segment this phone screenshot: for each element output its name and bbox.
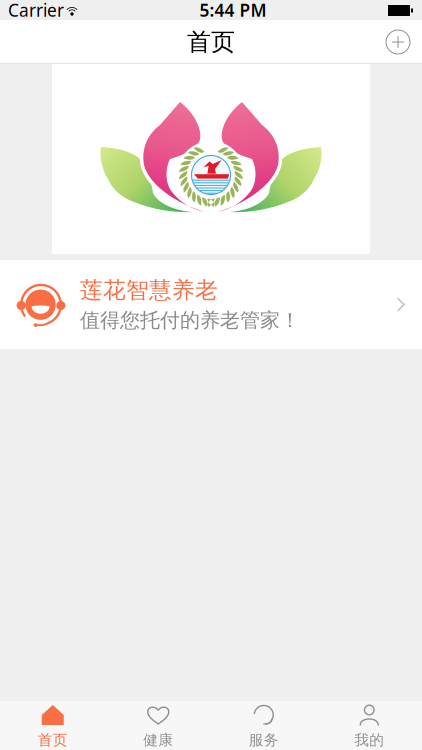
staticText: Carrier — [8, 0, 64, 21]
button[interactable]: 首页 — [0, 701, 105, 750]
staticText: 5:44 PM — [199, 0, 266, 21]
staticText: 我的 — [354, 731, 384, 749]
staticText: 莲花智慧养老 — [80, 276, 218, 304]
staticText: 值得您托付的养老管家！ — [80, 308, 300, 333]
button[interactable]: 服务 — [211, 701, 316, 750]
staticText: 服务 — [249, 731, 279, 749]
button[interactable]: 健康 — [105, 701, 211, 750]
staticText: 健康 — [143, 731, 173, 749]
staticText: 首页 — [187, 27, 235, 57]
button[interactable]: 我的 — [316, 701, 422, 750]
staticText: 首页 — [38, 731, 68, 749]
button[interactable]: Add — [374, 20, 422, 64]
button[interactable]: 莲花智慧养老 — [0, 260, 422, 349]
